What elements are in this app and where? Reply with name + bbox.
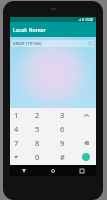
button[interactable]: Lacak Nomor: [10, 22, 96, 37]
staticText: 4: [14, 124, 19, 134]
button[interactable]: 1: [10, 108, 25, 122]
staticText: 5: [35, 124, 40, 134]
staticText: 9: [60, 138, 65, 148]
button[interactable]: 9: [50, 136, 75, 150]
staticText: 13.00: [85, 18, 94, 22]
staticText: Lacak Nomor: [13, 26, 46, 33]
staticText: #: [60, 152, 65, 162]
button[interactable]: Recents: [67, 165, 96, 176]
staticText: 8: [35, 138, 40, 148]
staticText: 2: [35, 110, 40, 120]
button[interactable]: 3: [50, 108, 75, 122]
staticText: 085811791966: [13, 41, 42, 47]
button[interactable]: 085811791966: [11, 40, 94, 47]
staticText: 6: [60, 124, 65, 134]
button[interactable]: *: [10, 150, 25, 164]
staticText: 1: [14, 110, 19, 120]
button[interactable]: Hide keypad: [82, 111, 90, 119]
button[interactable]: 4: [10, 122, 25, 136]
button[interactable]: 6: [50, 122, 75, 136]
button[interactable]: #: [50, 150, 75, 164]
button[interactable]: 5: [25, 122, 50, 136]
staticText: *: [14, 152, 19, 162]
button[interactable]: Home: [38, 165, 67, 176]
button[interactable]: 7: [10, 136, 25, 150]
staticText: 7: [14, 138, 19, 148]
button[interactable]: 0: [25, 150, 50, 164]
button[interactable]: 2: [25, 108, 50, 122]
button[interactable]: 8: [25, 136, 50, 150]
staticText: 0: [35, 152, 40, 162]
button[interactable]: Back: [10, 165, 38, 176]
button[interactable]: Call: [82, 153, 90, 161]
button[interactable]: Backspace: [82, 139, 90, 147]
staticText: 3: [60, 110, 65, 120]
